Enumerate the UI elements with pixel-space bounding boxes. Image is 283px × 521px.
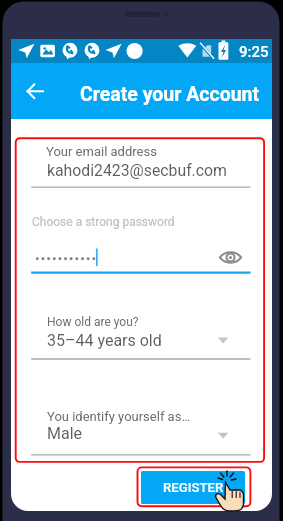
button[interactable]: Choose a strong password bbox=[20, 209, 263, 277]
staticText: Choose a strong password bbox=[32, 215, 175, 229]
staticText: You identify yourself as… bbox=[47, 409, 191, 424]
staticText: kahodi2423@secbuf.com bbox=[47, 161, 227, 180]
button[interactable]: Your email address bbox=[20, 137, 263, 189]
button[interactable]: You identify yourself as… bbox=[20, 403, 263, 457]
staticText: Your email address bbox=[46, 144, 157, 159]
staticText: 9:25 bbox=[239, 43, 269, 61]
button[interactable]: Show password bbox=[217, 244, 244, 271]
staticText: 35–44 years old bbox=[47, 331, 162, 350]
button[interactable]: Navigate back bbox=[24, 77, 52, 105]
staticText: Create your Account bbox=[80, 83, 260, 106]
staticText: Male bbox=[47, 424, 83, 443]
staticText: How old are you? bbox=[47, 315, 139, 329]
button[interactable]: REGISTER bbox=[141, 471, 245, 504]
button[interactable]: How old are you? bbox=[20, 307, 263, 361]
staticText: REGISTER bbox=[163, 480, 224, 495]
